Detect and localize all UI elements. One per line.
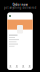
button[interactable]: Tab	[7, 63, 14, 70]
staticText: get anything delivered	[3, 6, 36, 9]
button[interactable]: Tab	[14, 63, 20, 70]
button[interactable]: Tab	[26, 63, 33, 70]
staticText: Order now	[12, 3, 27, 6]
button[interactable]: Tab	[20, 63, 26, 70]
